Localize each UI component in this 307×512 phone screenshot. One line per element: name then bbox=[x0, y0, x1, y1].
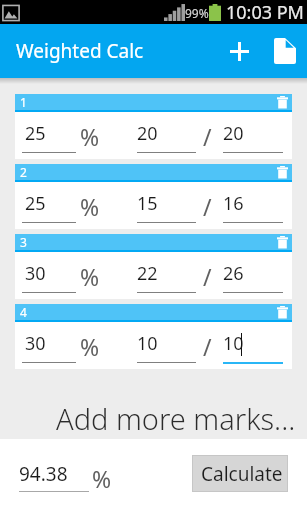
button[interactable]: Calculate bbox=[192, 455, 288, 492]
staticText: Add more marks... bbox=[56, 399, 296, 438]
button[interactable]: 30 bbox=[25, 261, 46, 286]
button[interactable]: 20 bbox=[223, 121, 244, 146]
button[interactable]: 22 bbox=[137, 261, 158, 286]
other: Delete bbox=[277, 166, 288, 179]
staticText: 10 bbox=[137, 331, 158, 356]
staticText: % bbox=[80, 331, 100, 362]
other: Delete bbox=[277, 96, 288, 109]
staticText: 25 bbox=[25, 121, 46, 146]
staticText: 20 bbox=[137, 121, 158, 146]
staticText: 15 bbox=[137, 191, 158, 216]
button[interactable]: 25 bbox=[25, 191, 46, 216]
staticText: 22 bbox=[137, 261, 158, 286]
staticText: 26 bbox=[223, 261, 244, 286]
staticText: / bbox=[203, 191, 212, 222]
staticText: 10 bbox=[223, 331, 244, 356]
button[interactable]: 4 bbox=[15, 304, 292, 322]
button[interactable]: 30 bbox=[25, 331, 46, 356]
staticText: 16 bbox=[223, 191, 244, 216]
staticText: % bbox=[80, 261, 100, 292]
button[interactable]: Add bbox=[216, 24, 262, 78]
button[interactable]: Add more marks... bbox=[0, 369, 307, 439]
staticText: 30 bbox=[25, 261, 46, 286]
staticText: / bbox=[203, 121, 212, 152]
staticText: 30 bbox=[25, 331, 46, 356]
button[interactable]: 2 bbox=[15, 164, 292, 182]
staticText: 20 bbox=[223, 121, 244, 146]
button[interactable]: 94.38 bbox=[19, 461, 68, 487]
button[interactable]: 1 bbox=[15, 94, 292, 112]
staticText: % bbox=[80, 191, 100, 222]
staticText: 99% bbox=[185, 5, 209, 21]
staticText: % bbox=[80, 121, 100, 152]
staticText: 25 bbox=[25, 191, 46, 216]
button[interactable]: 26 bbox=[223, 261, 244, 286]
staticText: Weighted Calc bbox=[16, 38, 144, 64]
staticText: 10:03 PM bbox=[226, 0, 304, 24]
button[interactable]: 3 bbox=[15, 234, 292, 252]
staticText: 3 bbox=[20, 234, 27, 250]
button[interactable]: 25 bbox=[25, 121, 46, 146]
other: Delete bbox=[277, 236, 288, 249]
staticText: / bbox=[203, 331, 212, 362]
staticText: 4 bbox=[20, 304, 27, 320]
staticText: Calculate bbox=[201, 461, 283, 487]
button[interactable]: New document bbox=[262, 24, 307, 78]
button[interactable]: 10 bbox=[223, 331, 244, 356]
staticText: 1 bbox=[20, 94, 27, 110]
button[interactable]: 16 bbox=[223, 191, 244, 216]
staticText: % bbox=[92, 463, 112, 494]
button[interactable]: 10 bbox=[137, 331, 158, 356]
button[interactable]: 20 bbox=[137, 121, 158, 146]
other: Delete bbox=[277, 306, 288, 319]
button[interactable]: 15 bbox=[137, 191, 158, 216]
staticText: / bbox=[203, 261, 212, 292]
staticText: 2 bbox=[20, 164, 27, 180]
